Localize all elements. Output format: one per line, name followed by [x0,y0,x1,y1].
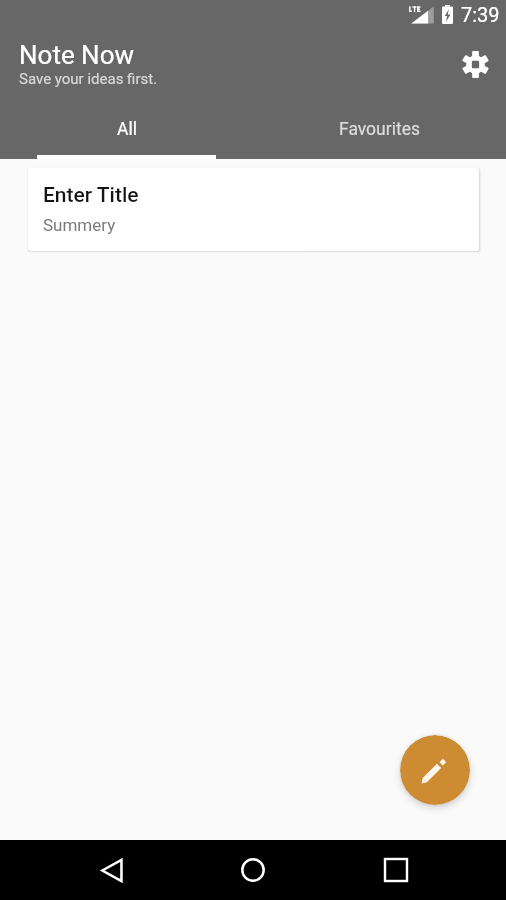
button[interactable]: Back [88,846,136,894]
button[interactable]: Recent apps [372,846,420,894]
button[interactable]: Favourites [253,112,506,159]
staticText: 7:39 [461,3,500,26]
staticText: Favourites [339,119,420,140]
staticText: All [117,119,137,140]
button[interactable]: New note [400,735,470,805]
staticText: Summery [43,215,116,235]
button[interactable]: Home [229,846,277,894]
button[interactable]: Enter Title [28,168,479,251]
staticText: Note Now [19,40,135,70]
staticText: Save your ideas first. [19,70,158,88]
button[interactable]: All [0,112,253,159]
staticText: Enter Title [43,183,139,208]
button[interactable]: Settings [453,42,497,86]
